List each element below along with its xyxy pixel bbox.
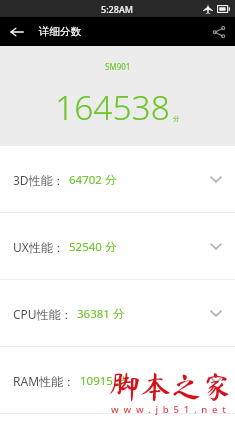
staticText: 36381 分 (77, 306, 125, 322)
staticText: 164538 (55, 84, 170, 130)
staticText: 详细分数 (39, 25, 81, 38)
button[interactable]: RAM性能： (0, 347, 235, 413)
staticText: UX性能： (13, 239, 65, 255)
staticText: 分 (173, 115, 180, 123)
button[interactable]: CPU性能： (0, 280, 235, 346)
staticText: 64702 分 (69, 172, 117, 188)
staticText: 52540 分 (69, 239, 117, 255)
staticText: 10915 分 (80, 373, 128, 389)
staticText: 3D性能： (13, 172, 65, 188)
button[interactable]: Share (204, 17, 233, 46)
staticText: CPU性能： (13, 306, 73, 322)
staticText: www.jb51.net (111, 403, 231, 416)
button[interactable]: 3D性能： (0, 146, 235, 212)
button[interactable]: UX性能： (0, 213, 235, 279)
staticText: 5:28AM (101, 3, 134, 15)
staticText: RAM性能： (13, 373, 76, 389)
staticText: SM901 (105, 61, 131, 72)
button[interactable]: Back (2, 17, 31, 46)
staticText: 脚本之家 (109, 371, 233, 402)
